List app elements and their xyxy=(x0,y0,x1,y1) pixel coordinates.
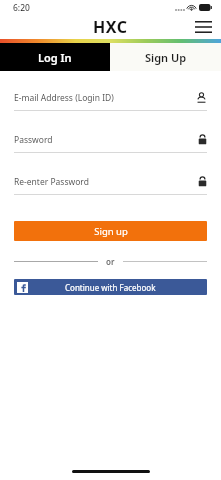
staticText: HXC xyxy=(93,16,128,38)
button[interactable]: Menu xyxy=(191,15,215,39)
staticText: E-mail Address (Login ID) xyxy=(14,92,196,104)
staticText: 6:20 xyxy=(13,2,30,14)
staticText: Re-enter Password xyxy=(14,176,198,188)
button[interactable]: E-mail Address (Login ID) xyxy=(14,89,207,111)
staticText: or xyxy=(106,256,115,267)
button[interactable]: Sign up xyxy=(14,221,207,241)
button[interactable]: Sign Up xyxy=(110,43,221,71)
staticText: Sign up xyxy=(94,225,128,238)
button[interactable]: Re-enter Password xyxy=(14,173,207,195)
button[interactable]: Log In xyxy=(0,43,110,71)
staticText: Sign Up xyxy=(145,50,187,65)
staticText: Log In xyxy=(38,50,72,65)
button[interactable]: Password xyxy=(14,131,207,153)
staticText: Password xyxy=(14,134,198,146)
staticText: Continue with Facebook xyxy=(65,282,156,293)
button[interactable]: Continue with Facebook xyxy=(14,279,207,295)
